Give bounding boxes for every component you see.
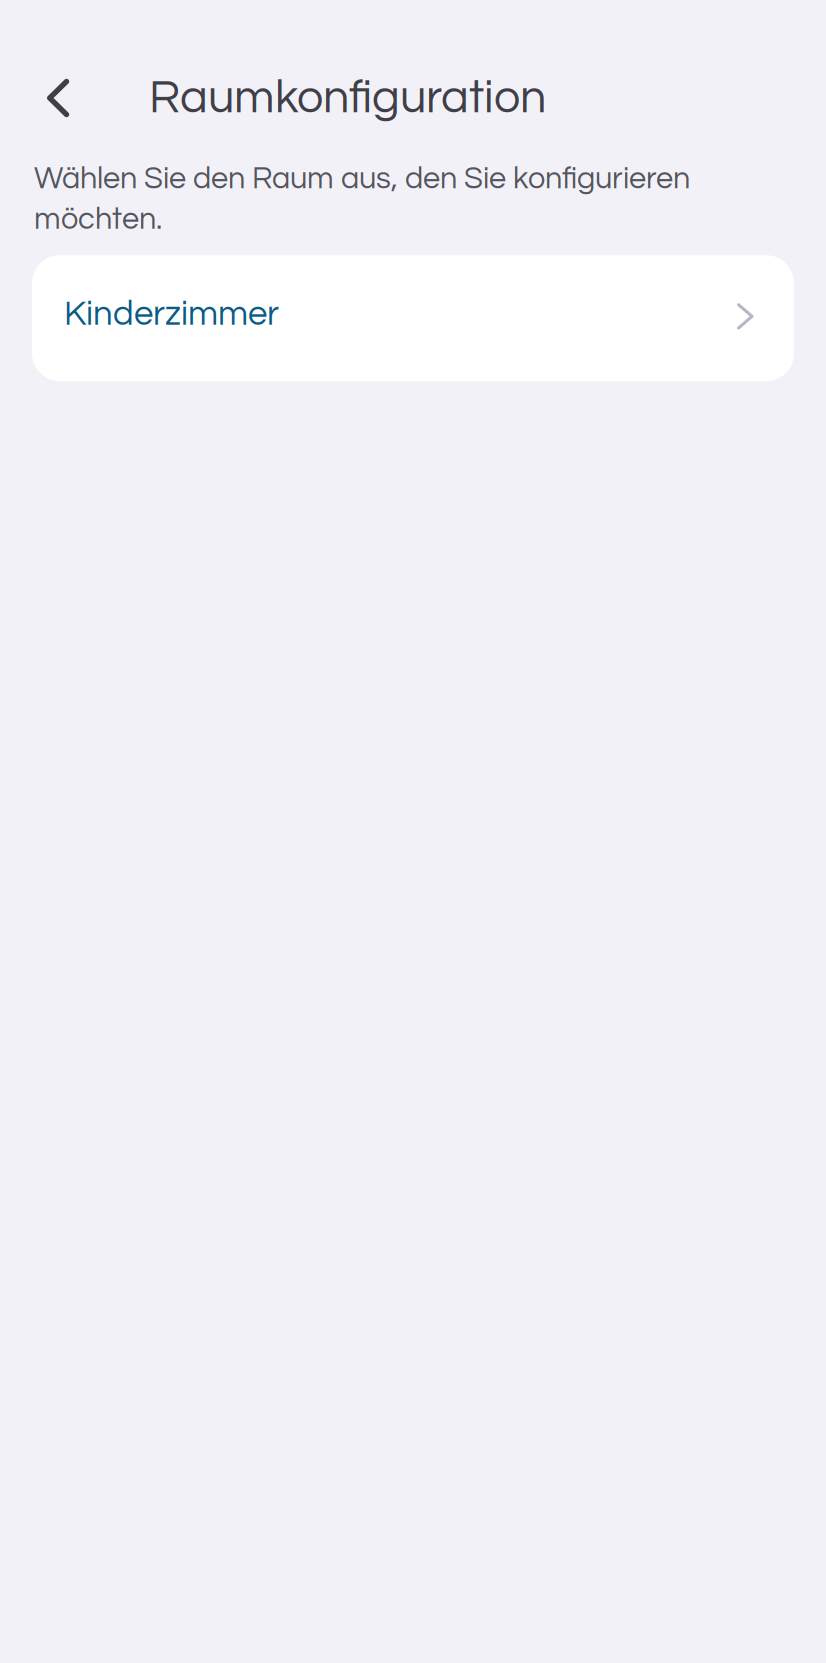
button[interactable]: Kinderzimmer — [32, 255, 794, 381]
button[interactable]: Back — [16, 56, 100, 140]
staticText: Kinderzimmer — [64, 296, 279, 332]
staticText: Wählen Sie den Raum aus, den Sie konfigu… — [34, 163, 690, 235]
staticText: Raumkonfiguration — [149, 74, 546, 122]
